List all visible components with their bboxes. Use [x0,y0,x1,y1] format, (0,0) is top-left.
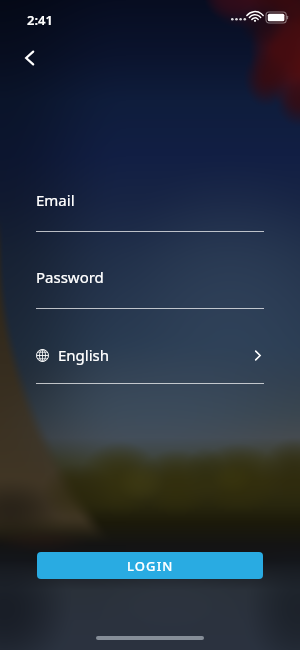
button[interactable]: English [36,345,264,365]
staticText: English [58,345,110,365]
staticText: Email [36,190,75,210]
staticText: Password [36,267,104,287]
staticText: 2:41 [27,11,53,29]
button[interactable]: LOGIN [37,552,263,579]
staticText: LOGIN [127,557,174,575]
button[interactable]: Back [9,37,51,79]
